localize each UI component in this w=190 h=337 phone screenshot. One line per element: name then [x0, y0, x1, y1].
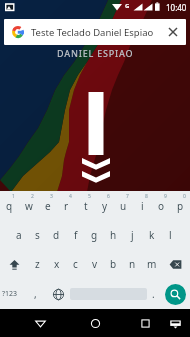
staticText: 9 — [164, 193, 167, 200]
button[interactable]: f — [66, 220, 85, 249]
button[interactable]: ?123 — [0, 279, 24, 309]
button[interactable]: x — [47, 249, 66, 279]
staticText: 2 — [31, 193, 34, 200]
staticText: t — [84, 199, 88, 213]
button[interactable]: j — [123, 220, 142, 249]
button[interactable]: 2 — [19, 191, 38, 220]
button[interactable]: b — [104, 249, 123, 279]
button[interactable]: d — [47, 220, 66, 249]
staticText: m — [147, 257, 157, 271]
button[interactable]: n — [123, 249, 142, 279]
staticText: Teste Teclado Daniel Espiao — [31, 26, 154, 39]
staticText: o — [158, 199, 165, 213]
button[interactable]: Clear search — [160, 19, 186, 45]
staticText: p — [177, 199, 184, 213]
staticText: c — [73, 257, 78, 271]
staticText: a — [16, 228, 22, 242]
staticText: 6 — [107, 193, 110, 200]
staticText: g — [91, 228, 98, 242]
button[interactable]: Hide keyboard — [161, 309, 189, 337]
staticText: f — [74, 228, 78, 242]
button[interactable]: 7 — [114, 191, 133, 220]
staticText: s — [35, 228, 40, 242]
button[interactable]: c — [66, 249, 85, 279]
button[interactable]: 9 — [152, 191, 171, 220]
button[interactable]: , — [23, 279, 47, 309]
staticText: x — [54, 257, 60, 271]
staticText: , — [34, 287, 37, 301]
button[interactable]: l — [161, 220, 180, 249]
staticText: ?123 — [2, 289, 18, 299]
button[interactable]: 3 — [38, 191, 57, 220]
button[interactable]: 1 — [0, 191, 19, 220]
button[interactable]: k — [142, 220, 161, 249]
staticText: 5 — [88, 193, 91, 200]
button[interactable]: m — [142, 249, 161, 279]
button[interactable]: h — [104, 220, 123, 249]
staticText: n — [129, 257, 136, 271]
button[interactable]: 0 — [171, 191, 190, 220]
button[interactable]: Change language — [46, 279, 70, 309]
button[interactable]: s — [28, 220, 47, 249]
staticText: . — [152, 287, 155, 301]
button[interactable]: v — [85, 249, 104, 279]
staticText: DANIEL ESPIAO — [57, 47, 134, 59]
staticText: d — [53, 228, 60, 242]
staticText: b — [110, 257, 117, 271]
button[interactable]: Backspace — [161, 249, 190, 279]
staticText: z — [35, 257, 40, 271]
staticText: h — [110, 228, 117, 242]
button[interactable]: Teste Teclado Daniel Espiao — [4, 19, 186, 45]
staticText: w — [25, 199, 33, 213]
staticText: 8 — [145, 193, 148, 200]
button[interactable]: 8 — [133, 191, 152, 220]
staticText: i — [141, 199, 144, 213]
button[interactable]: g — [85, 220, 104, 249]
staticText: 3 — [50, 193, 53, 200]
button[interactable]: Home — [81, 309, 109, 337]
staticText: v — [92, 257, 98, 271]
staticText: k — [149, 228, 155, 242]
staticText: e — [45, 199, 51, 213]
button[interactable]: 4 — [57, 191, 76, 220]
staticText: G — [125, 2, 130, 10]
button[interactable]: Back — [26, 309, 54, 337]
staticText: y — [102, 199, 108, 213]
staticText: 1 — [12, 193, 15, 200]
staticText: u — [120, 199, 127, 213]
staticText: 10:40 — [166, 2, 187, 13]
staticText: r — [64, 199, 69, 213]
staticText: 7 — [126, 193, 129, 200]
staticText: j — [131, 228, 134, 242]
staticText: 4 — [69, 193, 72, 200]
button[interactable]: a — [9, 220, 28, 249]
button[interactable]: Shift — [0, 249, 28, 279]
button[interactable]: 5 — [76, 191, 95, 220]
button[interactable]: . — [145, 279, 161, 309]
staticText: l — [169, 228, 172, 242]
button[interactable]: Recent apps — [131, 309, 159, 337]
button[interactable]: 6 — [95, 191, 114, 220]
button[interactable]: Search — [165, 284, 186, 305]
button[interactable]: z — [28, 249, 47, 279]
staticText: q — [6, 199, 13, 213]
staticText: 0 — [183, 193, 186, 200]
